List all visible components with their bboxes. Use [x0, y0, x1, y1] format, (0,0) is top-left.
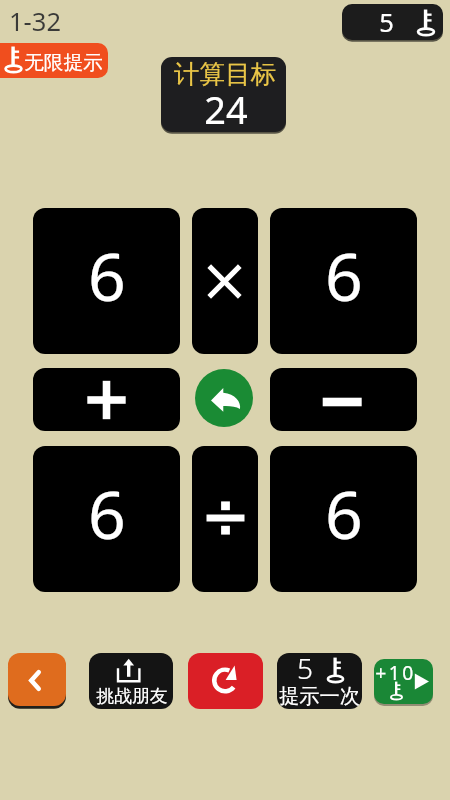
staticText: 6 — [325, 230, 363, 320]
staticText: 无限提示 — [24, 50, 103, 75]
button[interactable]: Keys: 5 — [342, 4, 443, 40]
button[interactable]: Restart — [188, 653, 263, 709]
staticText: 6 — [88, 230, 126, 320]
button[interactable]: Back — [8, 653, 66, 706]
button[interactable]: Minus — [270, 368, 417, 431]
staticText: 5 — [379, 5, 394, 40]
button[interactable]: Undo — [195, 369, 253, 427]
staticText: 5 — [297, 649, 313, 687]
button[interactable]: 6 — [270, 208, 417, 354]
button[interactable]: Divide — [192, 446, 258, 592]
staticText: 6 — [325, 468, 363, 558]
staticText: 24 — [204, 83, 248, 135]
button[interactable]: One hint — [277, 653, 362, 709]
button[interactable]: Watch ad for 10 keys — [374, 659, 433, 704]
button[interactable]: 6 — [33, 208, 180, 354]
button[interactable]: Plus — [33, 368, 180, 431]
button[interactable]: 6 — [270, 446, 417, 592]
staticText: 计算目标 — [174, 58, 276, 90]
button[interactable]: Multiply — [192, 208, 258, 354]
staticText: 1-32 — [9, 4, 61, 39]
button[interactable]: Unlimited hints — [0, 43, 108, 78]
button[interactable] — [161, 57, 286, 132]
staticText: 提示一次 — [279, 684, 360, 709]
staticText: 6 — [88, 468, 126, 558]
button[interactable]: Challenge a friend — [89, 653, 173, 709]
staticText: +10 — [375, 659, 416, 685]
button[interactable]: 6 — [33, 446, 180, 592]
staticText: 挑战朋友 — [96, 685, 168, 707]
